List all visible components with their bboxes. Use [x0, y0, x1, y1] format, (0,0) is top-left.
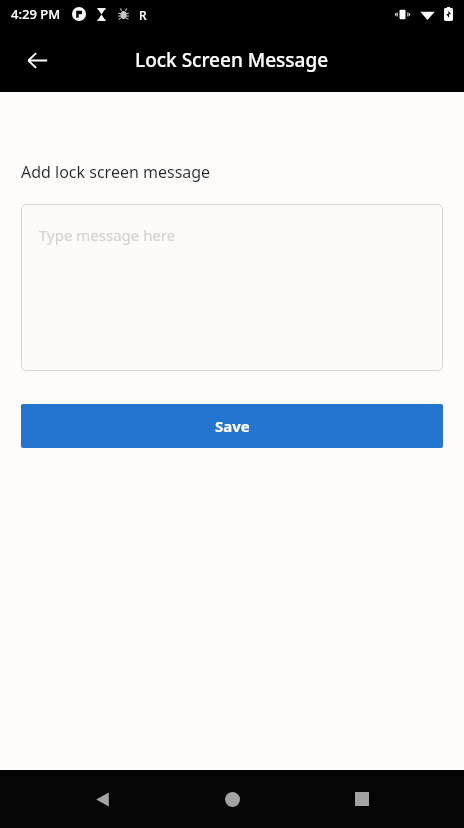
staticText: Rx — [139, 7, 153, 22]
staticText: Add lock screen message — [21, 161, 211, 183]
button[interactable]: Back — [14, 37, 60, 83]
button[interactable]: Recent apps — [334, 771, 390, 827]
staticText: 4:29 PM — [11, 5, 61, 23]
button[interactable]: Type message here — [21, 204, 443, 371]
staticText: Type message here — [39, 225, 176, 245]
button[interactable]: Home — [204, 771, 260, 827]
button[interactable]: Back — [74, 771, 130, 827]
staticText: Save — [215, 416, 250, 436]
staticText: Lock Screen Message — [135, 47, 329, 73]
button[interactable]: Save — [21, 404, 443, 448]
